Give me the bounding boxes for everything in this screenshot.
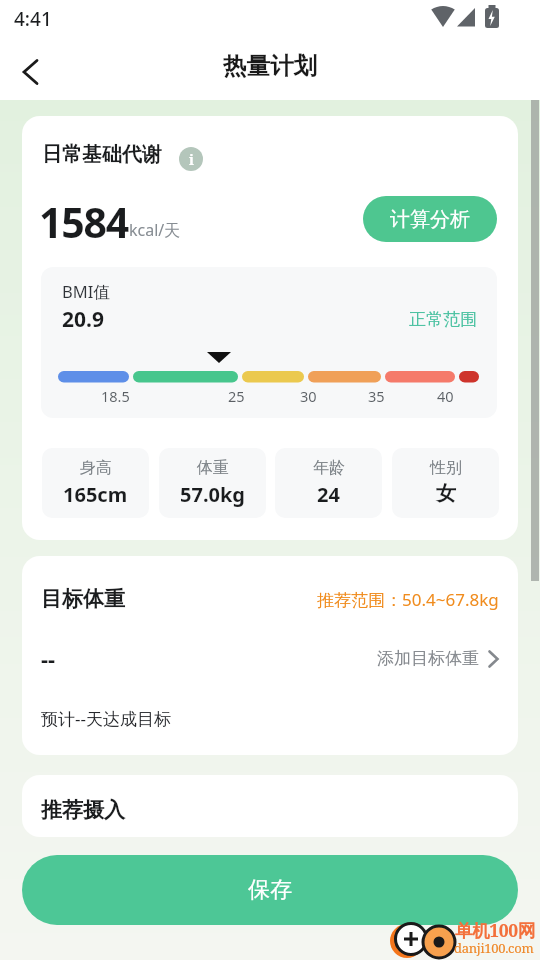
staticText: danji100.com — [454, 939, 534, 957]
staticText: 女 — [436, 481, 456, 506]
button[interactable]: 性别 — [392, 448, 499, 518]
staticText: 保存 — [248, 876, 292, 904]
staticText: 推荐范围：50.4~67.8kg — [317, 588, 499, 611]
staticText: 身高 — [80, 458, 112, 478]
staticText: -- — [41, 643, 56, 673]
staticText: 正常范围 — [409, 309, 477, 330]
staticText: i — [189, 150, 194, 169]
staticText: 热量计划 — [223, 51, 317, 81]
button[interactable]: 体重 — [159, 448, 266, 518]
staticText: 35 — [368, 386, 385, 406]
button[interactable] — [10, 52, 50, 92]
staticText: BMI值 — [62, 280, 110, 303]
button[interactable]: 添加目标体重 — [22, 648, 499, 669]
staticText: 24 — [317, 481, 340, 508]
staticText: 年龄 — [313, 458, 345, 478]
staticText: 40 — [437, 386, 454, 406]
staticText: 4:41 — [14, 6, 52, 32]
button[interactable]: 年龄 — [275, 448, 382, 518]
button[interactable]: 计算分析 — [363, 196, 497, 242]
staticText: 18.5 — [101, 386, 130, 406]
staticText: 体重 — [197, 458, 229, 478]
staticText: 单机100网 — [455, 918, 535, 942]
staticText: 计算分析 — [390, 207, 470, 232]
staticText: kcal/天 — [129, 219, 181, 241]
staticText: 日常基础代谢 — [42, 142, 162, 167]
button[interactable]: i — [179, 147, 203, 171]
staticText: 1584 — [39, 194, 129, 250]
staticText: 推荐摄入 — [41, 797, 125, 823]
staticText: 20.9 — [62, 305, 104, 334]
staticText: 165cm — [63, 481, 128, 508]
staticText: 添加目标体重 — [377, 648, 479, 669]
staticText: 57.0kg — [180, 481, 245, 508]
staticText: 预计--天达成目标 — [41, 707, 171, 730]
button[interactable]: 保存 — [22, 855, 518, 925]
staticText: 性别 — [430, 458, 462, 478]
staticText: 25 — [228, 386, 245, 406]
staticText: 30 — [300, 386, 317, 406]
staticText: 目标体重 — [41, 586, 125, 612]
button[interactable]: 身高 — [42, 448, 149, 518]
